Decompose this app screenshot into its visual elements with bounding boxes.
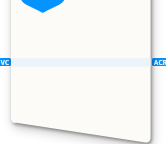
button[interactable]: ACR RECORD — [152, 58, 166, 66]
staticText: ACR RECORD — [154, 58, 166, 66]
staticText: ANNULLA NVC — [0, 58, 10, 66]
button[interactable]: ANNULLA NVC — [0, 58, 11, 66]
